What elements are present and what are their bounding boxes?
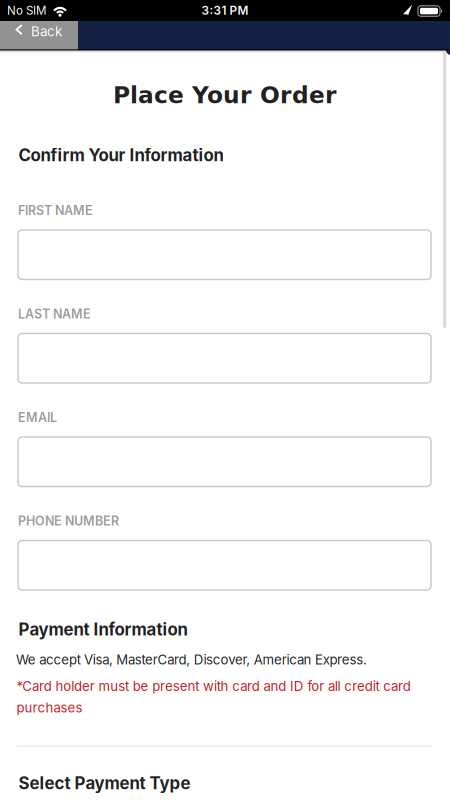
button[interactable]: Email <box>18 437 431 486</box>
staticText: *Card holder must be present with card a… <box>16 678 411 694</box>
staticText: purchases <box>16 700 82 716</box>
staticText: Back <box>31 23 62 39</box>
staticText: Confirm Your Information <box>18 145 223 165</box>
staticText: PHONE NUMBER <box>18 513 119 529</box>
staticText: Payment Information <box>19 619 188 639</box>
staticText: Place Your Order <box>113 82 337 109</box>
button[interactable]: Phone Number <box>18 540 431 590</box>
staticText: Select Payment Type <box>19 773 191 793</box>
button[interactable]: Back <box>0 21 78 50</box>
button[interactable]: Last Name <box>18 333 431 383</box>
staticText: FIRST NAME <box>18 203 93 218</box>
staticText: No SIM <box>7 3 46 17</box>
staticText: 3:31 PM <box>201 3 248 17</box>
staticText: We accept Visa, MasterCard, Discover, Am… <box>16 652 367 668</box>
staticText: EMAIL <box>18 410 57 425</box>
button[interactable]: First Name <box>18 230 431 279</box>
staticText: LAST NAME <box>18 306 91 322</box>
